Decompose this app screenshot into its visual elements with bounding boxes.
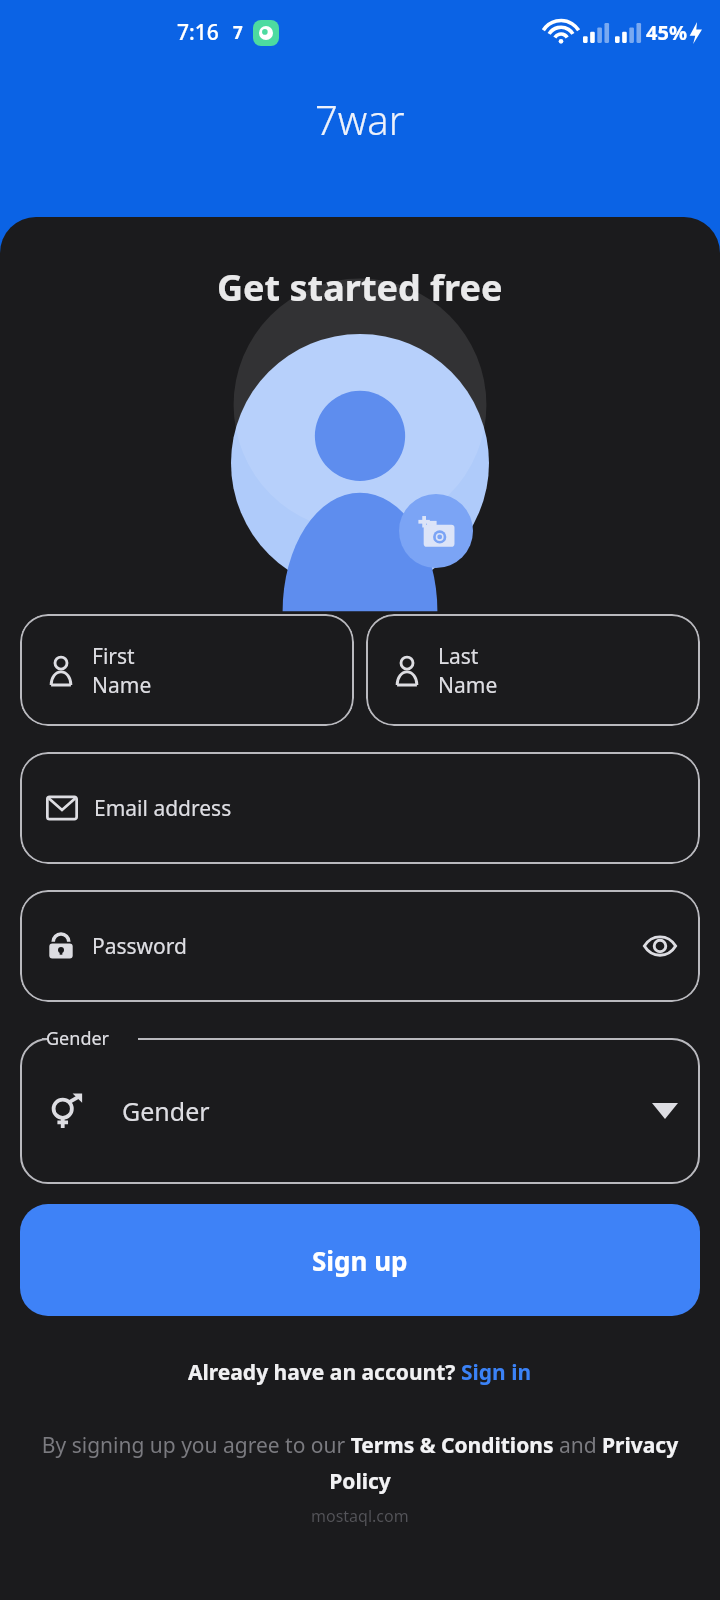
staticText: Email address xyxy=(94,794,682,823)
staticText: Get started free xyxy=(217,263,503,312)
staticText: Gender xyxy=(122,1094,652,1128)
staticText: Last Name xyxy=(438,642,682,699)
staticText: Already have an account? xyxy=(188,1358,461,1387)
staticText: First Name xyxy=(92,642,336,699)
staticText: 7war xyxy=(315,92,405,146)
button[interactable]: Already have an account? xyxy=(188,1358,532,1387)
button[interactable]: Password xyxy=(20,890,700,1002)
button[interactable]: By signing up you agree to our Terms & C… xyxy=(24,1431,696,1495)
button[interactable]: Show password xyxy=(638,924,682,968)
staticText: By signing up you agree to our Terms & C… xyxy=(24,1431,696,1495)
staticText: mostaql.com xyxy=(311,1505,409,1527)
button[interactable]: Sign up xyxy=(20,1204,700,1316)
staticText: 45% xyxy=(646,19,687,46)
button[interactable]: Email address xyxy=(20,752,700,864)
staticText: Password xyxy=(92,932,638,961)
staticText: Sign up xyxy=(312,1243,408,1278)
button[interactable]: First Name xyxy=(20,614,354,726)
staticText: 7 xyxy=(233,21,243,44)
staticText: Gender xyxy=(46,1026,110,1051)
staticText: 7:16 xyxy=(177,18,219,47)
button[interactable]: Gender xyxy=(20,1038,700,1184)
button[interactable]: Change profile photo xyxy=(231,334,489,592)
button[interactable]: Last Name xyxy=(366,614,700,726)
staticText: Sign in xyxy=(461,1358,532,1387)
